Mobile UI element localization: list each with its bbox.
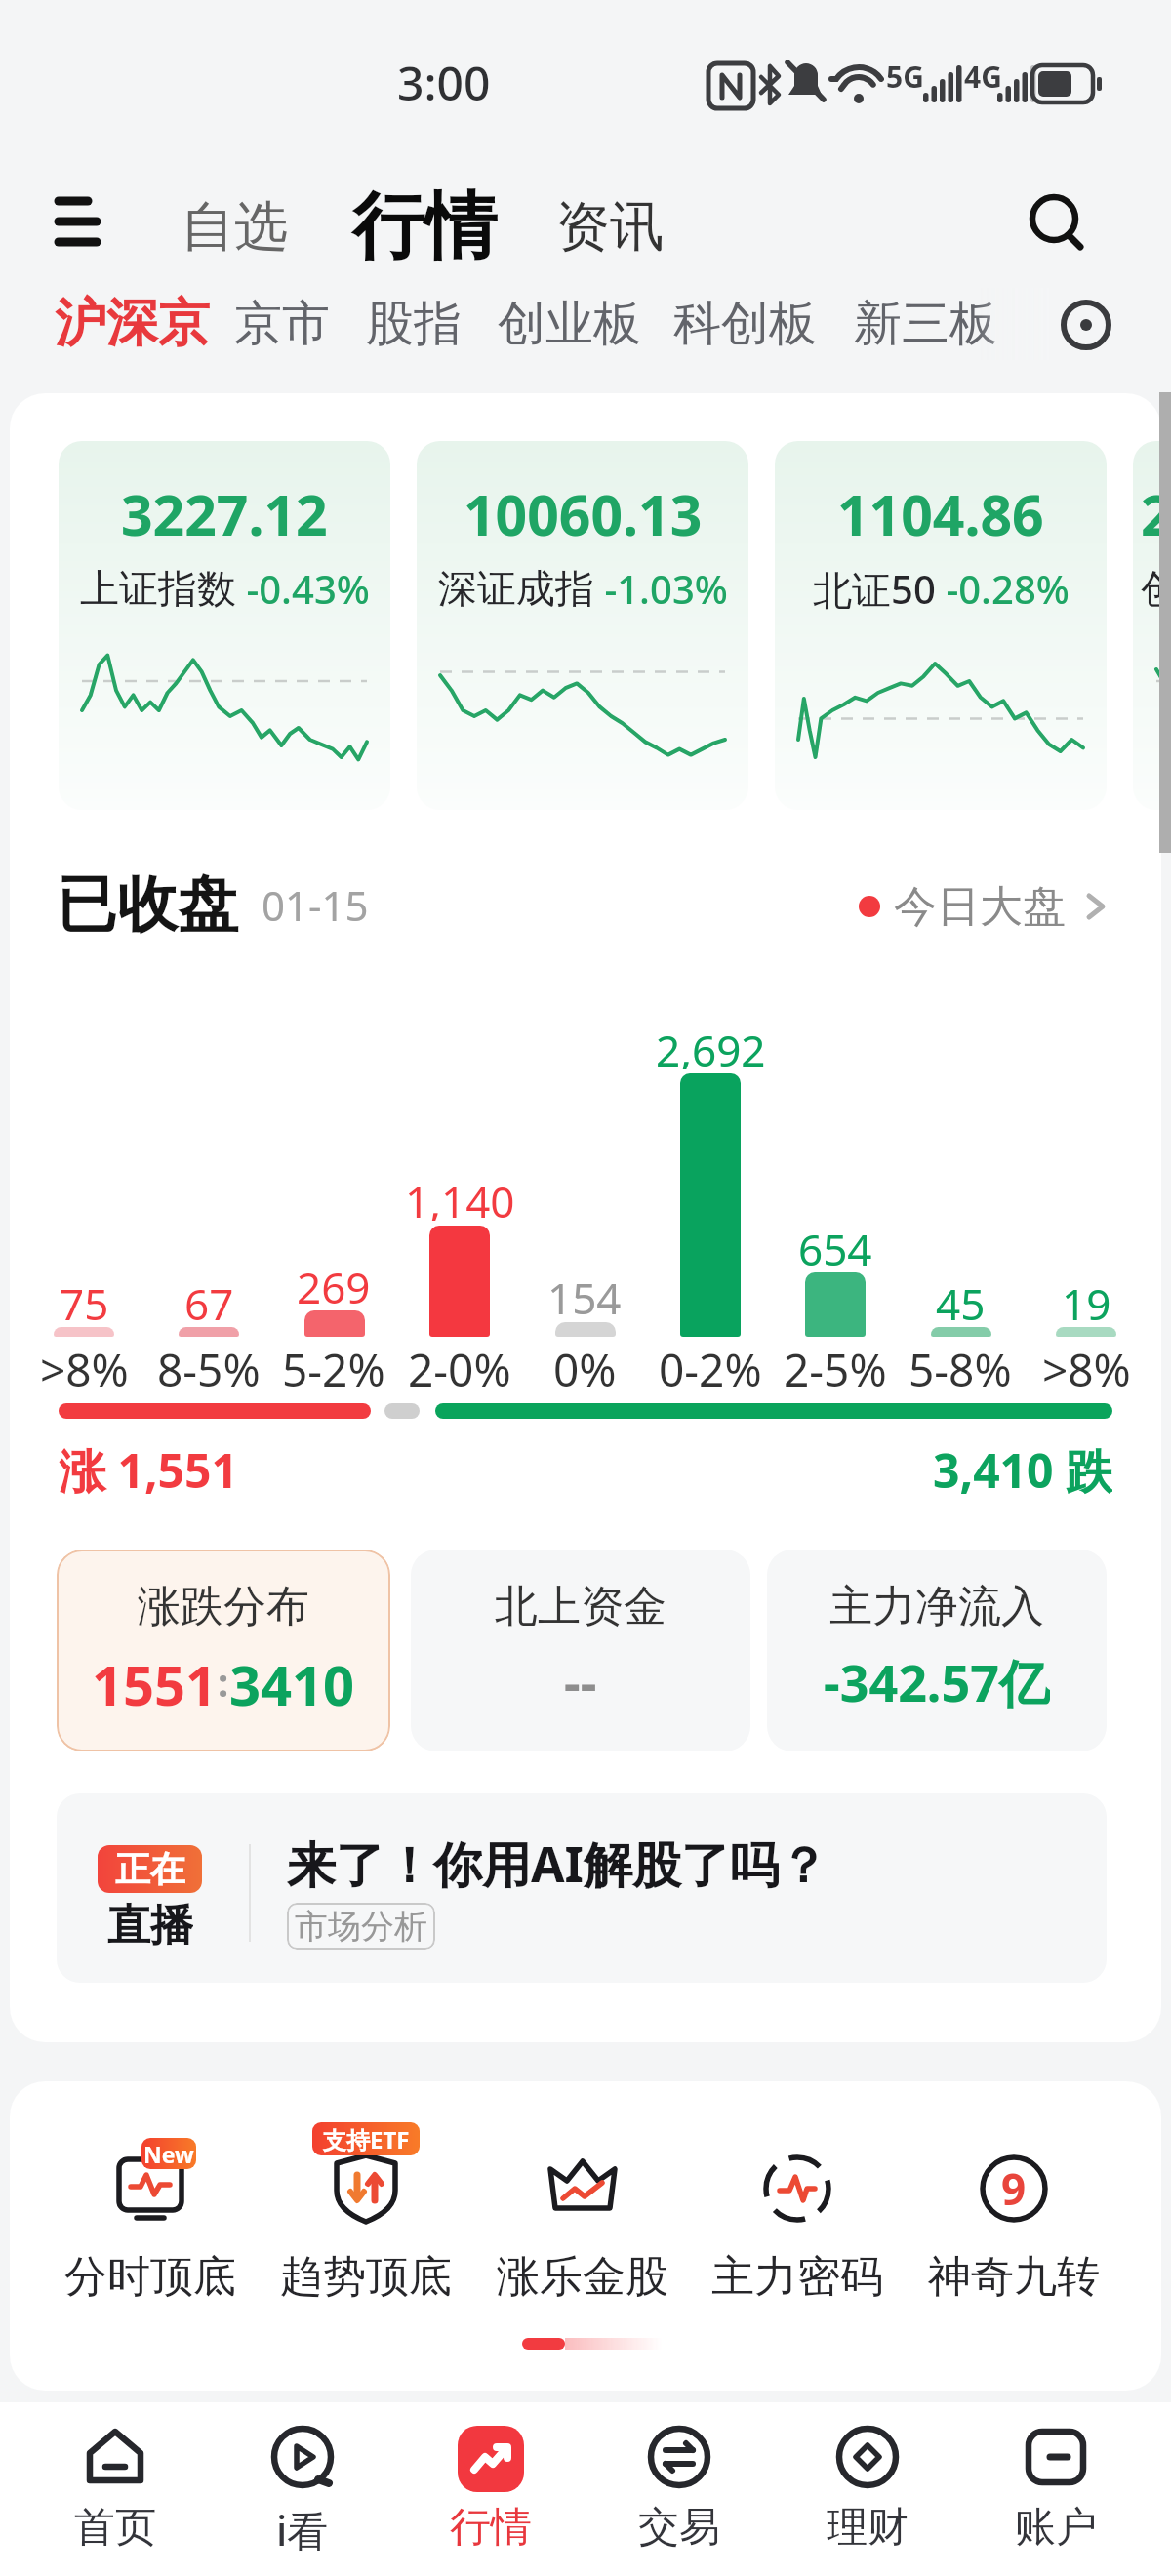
staticText: 股指	[366, 294, 462, 354]
staticText: 市场分析	[295, 1906, 427, 1948]
button[interactable]: 理财	[773, 2402, 961, 2576]
staticText: 涨跌分布	[138, 1580, 309, 1633]
button[interactable]: 自选	[166, 190, 303, 263]
staticText: 9	[1001, 2159, 1027, 2218]
staticText: 交易	[638, 2502, 720, 2554]
button[interactable]: 趋势顶底	[268, 2130, 464, 2355]
staticText: 首页	[74, 2502, 156, 2554]
staticText: 沪深京	[55, 291, 210, 356]
staticText: 资讯	[556, 193, 664, 261]
button[interactable]: 分时顶底	[53, 2130, 248, 2355]
button[interactable]: 新三板	[854, 293, 997, 355]
staticText: 分时顶底	[64, 2250, 236, 2304]
staticText: 2124.62	[1141, 476, 1171, 541]
staticText: 3:00	[397, 51, 491, 113]
staticText: 0%	[553, 1339, 617, 1388]
staticText: 45	[936, 1274, 986, 1323]
staticText: :	[218, 1655, 229, 1708]
button[interactable]: 账户	[961, 2402, 1150, 2576]
button[interactable]: 10060.13	[417, 441, 748, 810]
staticText: 5-8%	[909, 1339, 1012, 1388]
staticText: 主力净流入	[829, 1580, 1044, 1633]
button[interactable]: 神奇九转	[916, 2130, 1111, 2355]
staticText: 深证成指	[438, 564, 594, 613]
staticText: >8%	[40, 1339, 129, 1388]
staticText: 来了！你用AI解股了吗？	[287, 1831, 828, 1891]
staticText: 创业板指	[1141, 564, 1171, 613]
staticText: -1.03%	[594, 562, 728, 615]
staticText: 3,410 跌	[933, 1438, 1112, 1497]
button[interactable]: 2124.62	[1133, 441, 1171, 810]
button[interactable]: 主力净流入	[767, 1550, 1107, 1751]
button[interactable]: 涨跌分布	[57, 1550, 390, 1751]
staticText: 269	[297, 1258, 371, 1307]
staticText: 正在	[115, 1847, 185, 1891]
staticText: 涨乐金股	[497, 2250, 668, 2304]
button[interactable]: 创业板	[498, 293, 641, 355]
button[interactable]: 沪深京	[55, 289, 289, 357]
staticText: 神奇九转	[928, 2250, 1100, 2304]
staticText: 今日大盘	[894, 880, 1066, 934]
button[interactable]: 科创板	[673, 293, 817, 355]
staticText: 涨 1,551	[59, 1438, 238, 1497]
staticText: 科创板	[673, 294, 817, 354]
staticText: 654	[798, 1220, 872, 1268]
staticText: 1,140	[405, 1172, 515, 1221]
staticText: i看	[276, 2502, 329, 2557]
staticText: 2-5%	[784, 1339, 887, 1388]
staticText: 2-0%	[408, 1339, 511, 1388]
staticText: 直播	[107, 1899, 193, 1950]
button[interactable]: 今日大盘	[859, 878, 1110, 935]
button[interactable]: 交易	[585, 2402, 773, 2576]
staticText: >8%	[1042, 1339, 1131, 1388]
staticText: -342.57亿	[824, 1647, 1050, 1715]
staticText: 5G	[886, 57, 924, 96]
staticText: 8-5%	[157, 1339, 261, 1388]
staticText: 1551	[92, 1647, 218, 1715]
staticText: 3227.12	[121, 476, 328, 541]
button[interactable]: 行情	[337, 181, 512, 273]
staticText: 账户	[1015, 2502, 1097, 2554]
button[interactable]: 资讯	[542, 190, 678, 263]
button[interactable]: 主力密码	[700, 2130, 895, 2355]
staticText: 4G	[964, 57, 1002, 96]
button[interactable]: 北上资金	[411, 1550, 750, 1751]
staticText: 3410	[229, 1647, 355, 1715]
button[interactable]: 1104.86	[775, 441, 1107, 810]
staticText: 154	[547, 1268, 622, 1317]
staticText: 行情	[352, 181, 497, 272]
staticText: 10060.13	[464, 476, 703, 541]
button[interactable]	[1059, 298, 1113, 352]
staticText: 趋势顶底	[280, 2250, 452, 2304]
button[interactable]: 首页	[21, 2402, 209, 2576]
staticText: -0.43%	[236, 562, 370, 615]
staticText: -0.28%	[936, 562, 1070, 615]
button[interactable]: 行情	[396, 2402, 585, 2576]
staticText: --	[564, 1647, 597, 1715]
staticText: 主力密码	[711, 2250, 883, 2304]
button[interactable]: 股指	[366, 293, 462, 355]
staticText: 5-2%	[282, 1339, 385, 1388]
staticText: 75	[60, 1274, 109, 1323]
button[interactable]: i看	[209, 2402, 396, 2576]
staticText: 01-15	[262, 877, 369, 933]
button[interactable]: 3227.12	[59, 441, 390, 810]
staticText: 19	[1062, 1274, 1111, 1323]
button[interactable]	[1025, 193, 1093, 256]
staticText: 理财	[827, 2502, 909, 2554]
staticText: 67	[184, 1274, 234, 1323]
staticText: 行情	[450, 2502, 532, 2554]
button[interactable]: 正在	[57, 1793, 1107, 1983]
staticText: 新三板	[854, 294, 997, 354]
staticText: 1104.86	[837, 476, 1044, 541]
staticText: 0-2%	[659, 1339, 762, 1388]
button[interactable]: 涨乐金股	[485, 2130, 680, 2355]
staticText: 京市	[234, 294, 330, 354]
staticText: New	[143, 2139, 194, 2169]
button[interactable]: 京市	[234, 293, 330, 355]
staticText: 创业板	[498, 294, 641, 354]
staticText: 已收盘	[57, 866, 238, 943]
staticText: 北证50	[813, 562, 936, 616]
staticText: 自选	[181, 193, 288, 261]
staticText: 上证指数	[80, 564, 236, 613]
